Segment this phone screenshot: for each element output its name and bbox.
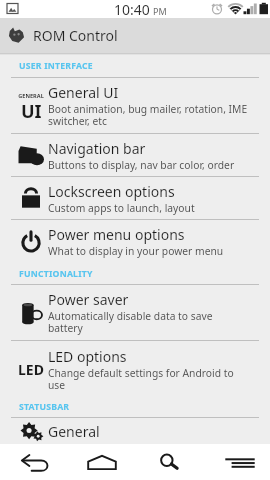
button[interactable]: Home — [78, 444, 128, 480]
staticText: Change default settings for Android to u… — [48, 366, 249, 392]
staticText: 10:40 — [114, 0, 150, 18]
button[interactable]: Power saver — [0, 285, 270, 340]
staticText: GENERAL — [18, 92, 44, 100]
staticText: FUNCTIONALITY — [19, 268, 93, 280]
button[interactable]: Power menu options — [0, 220, 270, 263]
staticText: PM — [153, 5, 167, 17]
staticText: LED — [18, 360, 44, 379]
staticText: UI — [21, 99, 42, 124]
staticText: Buttons to display, nav bar color, order — [48, 158, 235, 172]
staticText: LED options — [48, 347, 127, 366]
button[interactable]: Lockscreen options — [0, 177, 270, 219]
staticText: Power saver — [48, 290, 129, 309]
staticText: ROM Control — [33, 26, 118, 45]
button[interactable]: LED — [0, 341, 270, 397]
button[interactable]: GENERAL — [0, 78, 270, 133]
staticText: What to display in your power menu — [48, 244, 224, 258]
staticText: Custom apps to launch, layout — [48, 201, 195, 215]
staticText: Automatically disable data to save batte… — [48, 309, 249, 335]
button[interactable]: ROM Control — [0, 18, 270, 53]
staticText: Boot animation, bug mailer, rotation, IM… — [48, 102, 249, 128]
button[interactable]: Recent apps — [206, 444, 256, 480]
button[interactable]: Back — [14, 444, 64, 480]
staticText: Lockscreen options — [48, 182, 175, 201]
button[interactable]: General — [0, 418, 270, 444]
staticText: General — [48, 422, 100, 441]
staticText: STATUSBAR — [19, 401, 70, 413]
staticText: General UI — [48, 83, 119, 102]
staticText: Navigation bar — [48, 139, 146, 158]
staticText: Power menu options — [48, 225, 185, 244]
button[interactable]: Search — [142, 444, 192, 480]
button[interactable]: Navigation bar — [0, 134, 270, 176]
staticText: USER INTERFACE — [19, 60, 93, 72]
